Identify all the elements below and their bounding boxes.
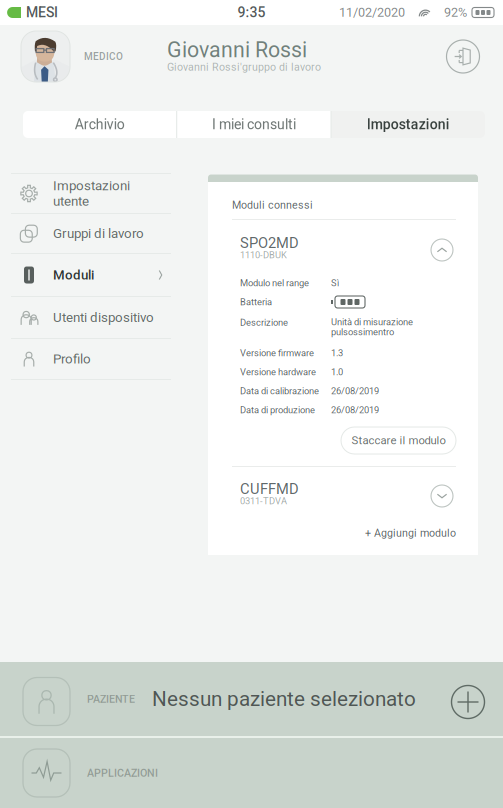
button[interactable]: Moduli xyxy=(11,254,171,296)
button[interactable]: Profilo xyxy=(11,339,171,379)
staticText: 1110-DBUK xyxy=(240,249,287,260)
staticText: Versione hardware xyxy=(240,366,316,377)
staticText: 9:35 xyxy=(237,4,265,21)
button[interactable]: Archivio xyxy=(23,111,176,138)
staticText: Batteria xyxy=(240,296,272,307)
staticText: Archivio xyxy=(75,116,125,133)
staticText: PAZIENTE xyxy=(87,693,135,705)
staticText: 26/08/2019 xyxy=(331,385,379,396)
button[interactable]: Esci xyxy=(442,35,484,77)
staticText: Profilo xyxy=(53,351,91,367)
button[interactable]: Utenti dispositivo xyxy=(11,297,171,338)
staticText: 92% xyxy=(444,5,467,20)
staticText: Modulo nel range xyxy=(240,277,309,288)
staticText: Impostazioni utente xyxy=(53,178,130,209)
staticText: MESI xyxy=(26,4,58,21)
button[interactable]: Gruppi di lavoro xyxy=(11,214,171,253)
staticText: I miei consulti xyxy=(212,116,296,133)
button[interactable]: Impostazioni utente xyxy=(11,174,171,213)
staticText: APPLICAZIONI xyxy=(87,767,158,779)
staticText: 1.0 xyxy=(331,366,343,377)
staticText: 11/02/2020 xyxy=(339,5,405,20)
button[interactable]: I miei consulti xyxy=(177,111,331,138)
button[interactable]: APPLICAZIONI xyxy=(0,738,503,808)
staticText: Staccare il modulo xyxy=(351,434,445,447)
staticText: Impostazioni xyxy=(367,116,450,133)
staticText: CUFFMD xyxy=(240,480,299,498)
staticText: Giovanni Rossi'gruppo di lavoro xyxy=(167,61,321,73)
staticText: + Aggiungi modulo xyxy=(365,527,456,539)
button[interactable]: Impostazioni xyxy=(332,111,485,138)
staticText: Unità di misurazione xyxy=(331,316,413,327)
staticText: 0311-TDVA xyxy=(240,495,287,506)
staticText: Data di produzione xyxy=(240,404,315,415)
staticText: Versione firmware xyxy=(240,347,314,358)
staticText: Nessun paziente selezionato xyxy=(152,687,416,711)
staticText: Sì xyxy=(331,277,339,288)
button[interactable]: Staccare il modulo xyxy=(341,427,456,454)
button[interactable]: Comprimi SPO2MD xyxy=(428,236,456,264)
staticText: Giovanni Rossi xyxy=(167,37,307,62)
staticText: Descrizione xyxy=(240,317,288,328)
button[interactable]: PAZIENTE xyxy=(0,662,503,736)
staticText: Moduli xyxy=(53,267,94,283)
staticText: pulsossimentro xyxy=(331,326,394,337)
button[interactable]: + Aggiungi modulo xyxy=(365,526,456,540)
staticText: SPO2MD xyxy=(240,234,299,252)
staticText: MEDICO xyxy=(84,51,123,62)
staticText: Moduli connessi xyxy=(232,199,313,211)
staticText: 1.3 xyxy=(331,347,343,358)
staticText: Data di calibrazione xyxy=(240,385,319,396)
staticText: Utenti dispositivo xyxy=(53,310,154,325)
staticText: Gruppi di lavoro xyxy=(53,226,144,241)
staticText: 26/08/2019 xyxy=(331,404,379,415)
button[interactable]: Espandi CUFFMD xyxy=(428,482,456,510)
